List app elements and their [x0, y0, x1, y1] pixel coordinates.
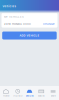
button[interactable]: Home: [0, 86, 12, 100]
button[interactable]: ADD VEHICLE: [2, 31, 57, 39]
staticText: ADD VEHICLE: [19, 34, 39, 37]
button[interactable]: Activity: [12, 86, 24, 100]
staticText: 2019 HONDA CIVIC: [4, 22, 31, 26]
staticText: Vehicles: [25, 94, 33, 97]
staticText: CHANGE: [43, 22, 55, 26]
staticText: Wallet: [38, 94, 45, 97]
button[interactable]: 2019 HONDA CIVIC: [1, 20, 57, 28]
staticText: Home: [3, 94, 9, 97]
button[interactable]: MY VEHICLES: [1, 13, 57, 20]
button[interactable]: Vehicles: [24, 86, 35, 100]
button[interactable]: Vehicles: [0, 5, 15, 10]
button[interactable]: More: [47, 86, 59, 100]
staticText: Vehicles: [2, 5, 15, 8]
staticText: More: [51, 94, 56, 97]
staticText: Activity: [13, 94, 22, 97]
button[interactable]: Wallet: [35, 86, 47, 100]
staticText: MY VEHICLES: [4, 15, 24, 18]
